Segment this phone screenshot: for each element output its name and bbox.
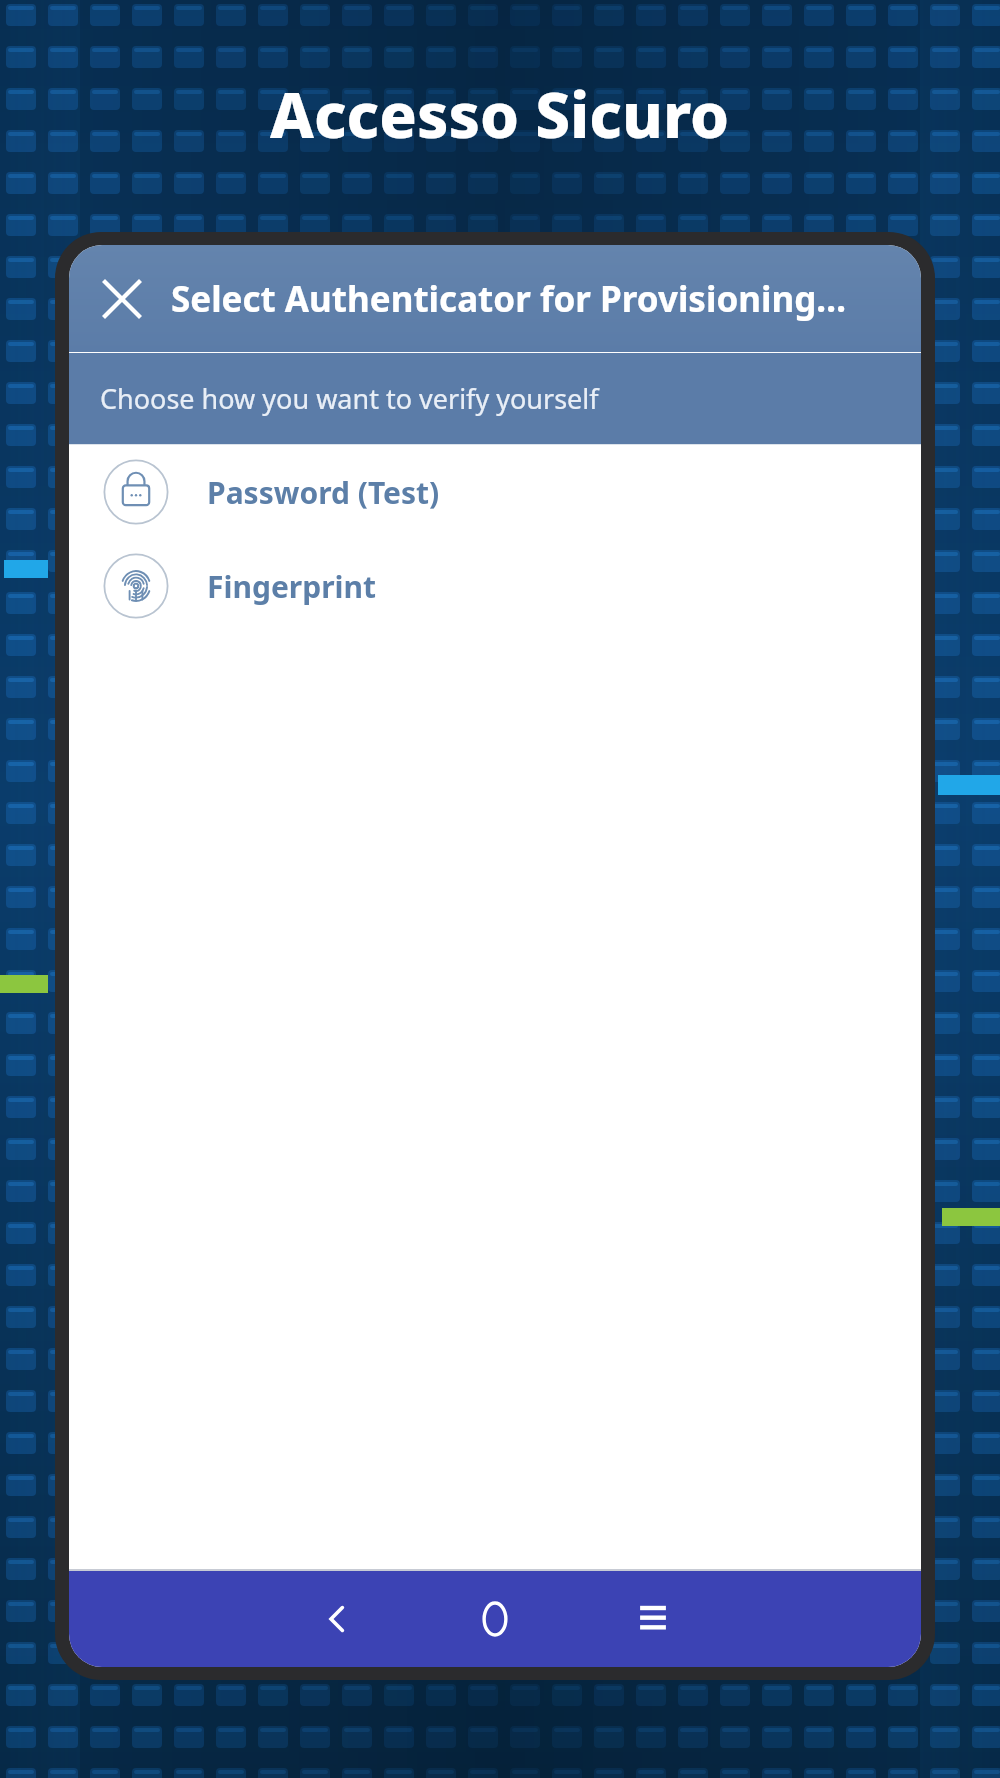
- button[interactable]: Home: [447, 1571, 543, 1667]
- button[interactable]: Close: [91, 268, 153, 330]
- button[interactable]: Recent apps: [605, 1571, 701, 1667]
- staticText: Choose how you want to verify yourself: [100, 380, 599, 417]
- button[interactable]: Back: [289, 1571, 385, 1667]
- button[interactable]: Password (Test): [69, 445, 921, 539]
- button[interactable]: Fingerprint: [69, 539, 921, 633]
- staticText: Select Authenticator for Provisioning…: [171, 275, 847, 323]
- staticText: Accesso Sicuro: [270, 72, 730, 156]
- staticText: Password (Test): [207, 472, 440, 513]
- staticText: Fingerprint: [207, 566, 377, 607]
